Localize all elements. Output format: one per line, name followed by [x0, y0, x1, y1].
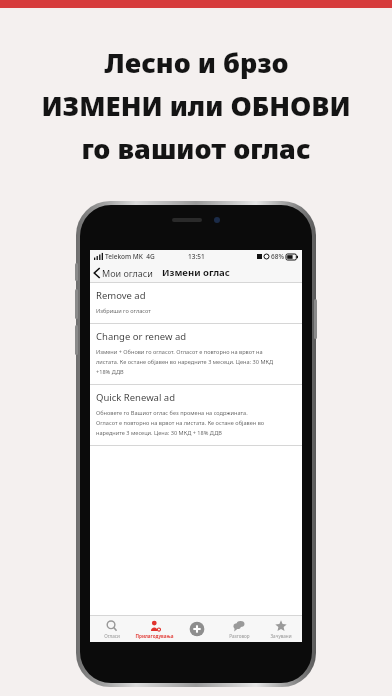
- button[interactable]: Разговор: [218, 618, 260, 641]
- staticText: Обновете го Вашиот оглас без промена на …: [96, 409, 248, 417]
- staticText: +18% ДДВ: [96, 368, 124, 376]
- staticText: 13:51: [188, 252, 205, 261]
- staticText: ИЗМЕНИ или ОБНОВИ: [41, 87, 351, 124]
- staticText: наредните 3 месеци. Цена: 30 МКД + 18% Д…: [96, 429, 222, 437]
- staticText: Огласи: [104, 633, 120, 639]
- staticText: Quick Renewal ad: [96, 391, 176, 404]
- button[interactable]: Remove ad: [90, 283, 302, 323]
- button[interactable]: Зачувани: [260, 618, 302, 641]
- staticText: Измени + Обнови го огласот. Огласот е по…: [96, 348, 263, 356]
- button[interactable]: Мои огласи: [90, 265, 157, 281]
- staticText: 68%: [271, 252, 284, 261]
- staticText: Remove ad: [96, 289, 146, 302]
- button[interactable]: Change or renew ad: [90, 324, 302, 384]
- staticText: Огласот е повторно на врвот на листата. …: [96, 419, 265, 427]
- button[interactable]: Прилагодувања: [133, 618, 176, 641]
- staticText: Telekom MK 4G: [105, 252, 155, 261]
- staticText: листата. Ке остане објавен во наредните …: [96, 358, 274, 366]
- staticText: Разговор: [229, 633, 250, 639]
- button[interactable]: Add: [176, 619, 218, 639]
- button[interactable]: Огласи: [90, 618, 133, 641]
- staticText: Прилагодувања: [135, 633, 174, 639]
- staticText: Зачувани: [270, 633, 292, 639]
- staticText: Избриши го огласот: [96, 307, 151, 315]
- staticText: го вашиот оглас: [81, 130, 311, 167]
- staticText: Лесно и брзо: [104, 44, 289, 81]
- staticText: Мои огласи: [102, 267, 153, 279]
- staticText: Change or renew ad: [96, 330, 187, 343]
- staticText: Измени оглас: [162, 266, 230, 279]
- button[interactable]: Quick Renewal ad: [90, 385, 302, 445]
